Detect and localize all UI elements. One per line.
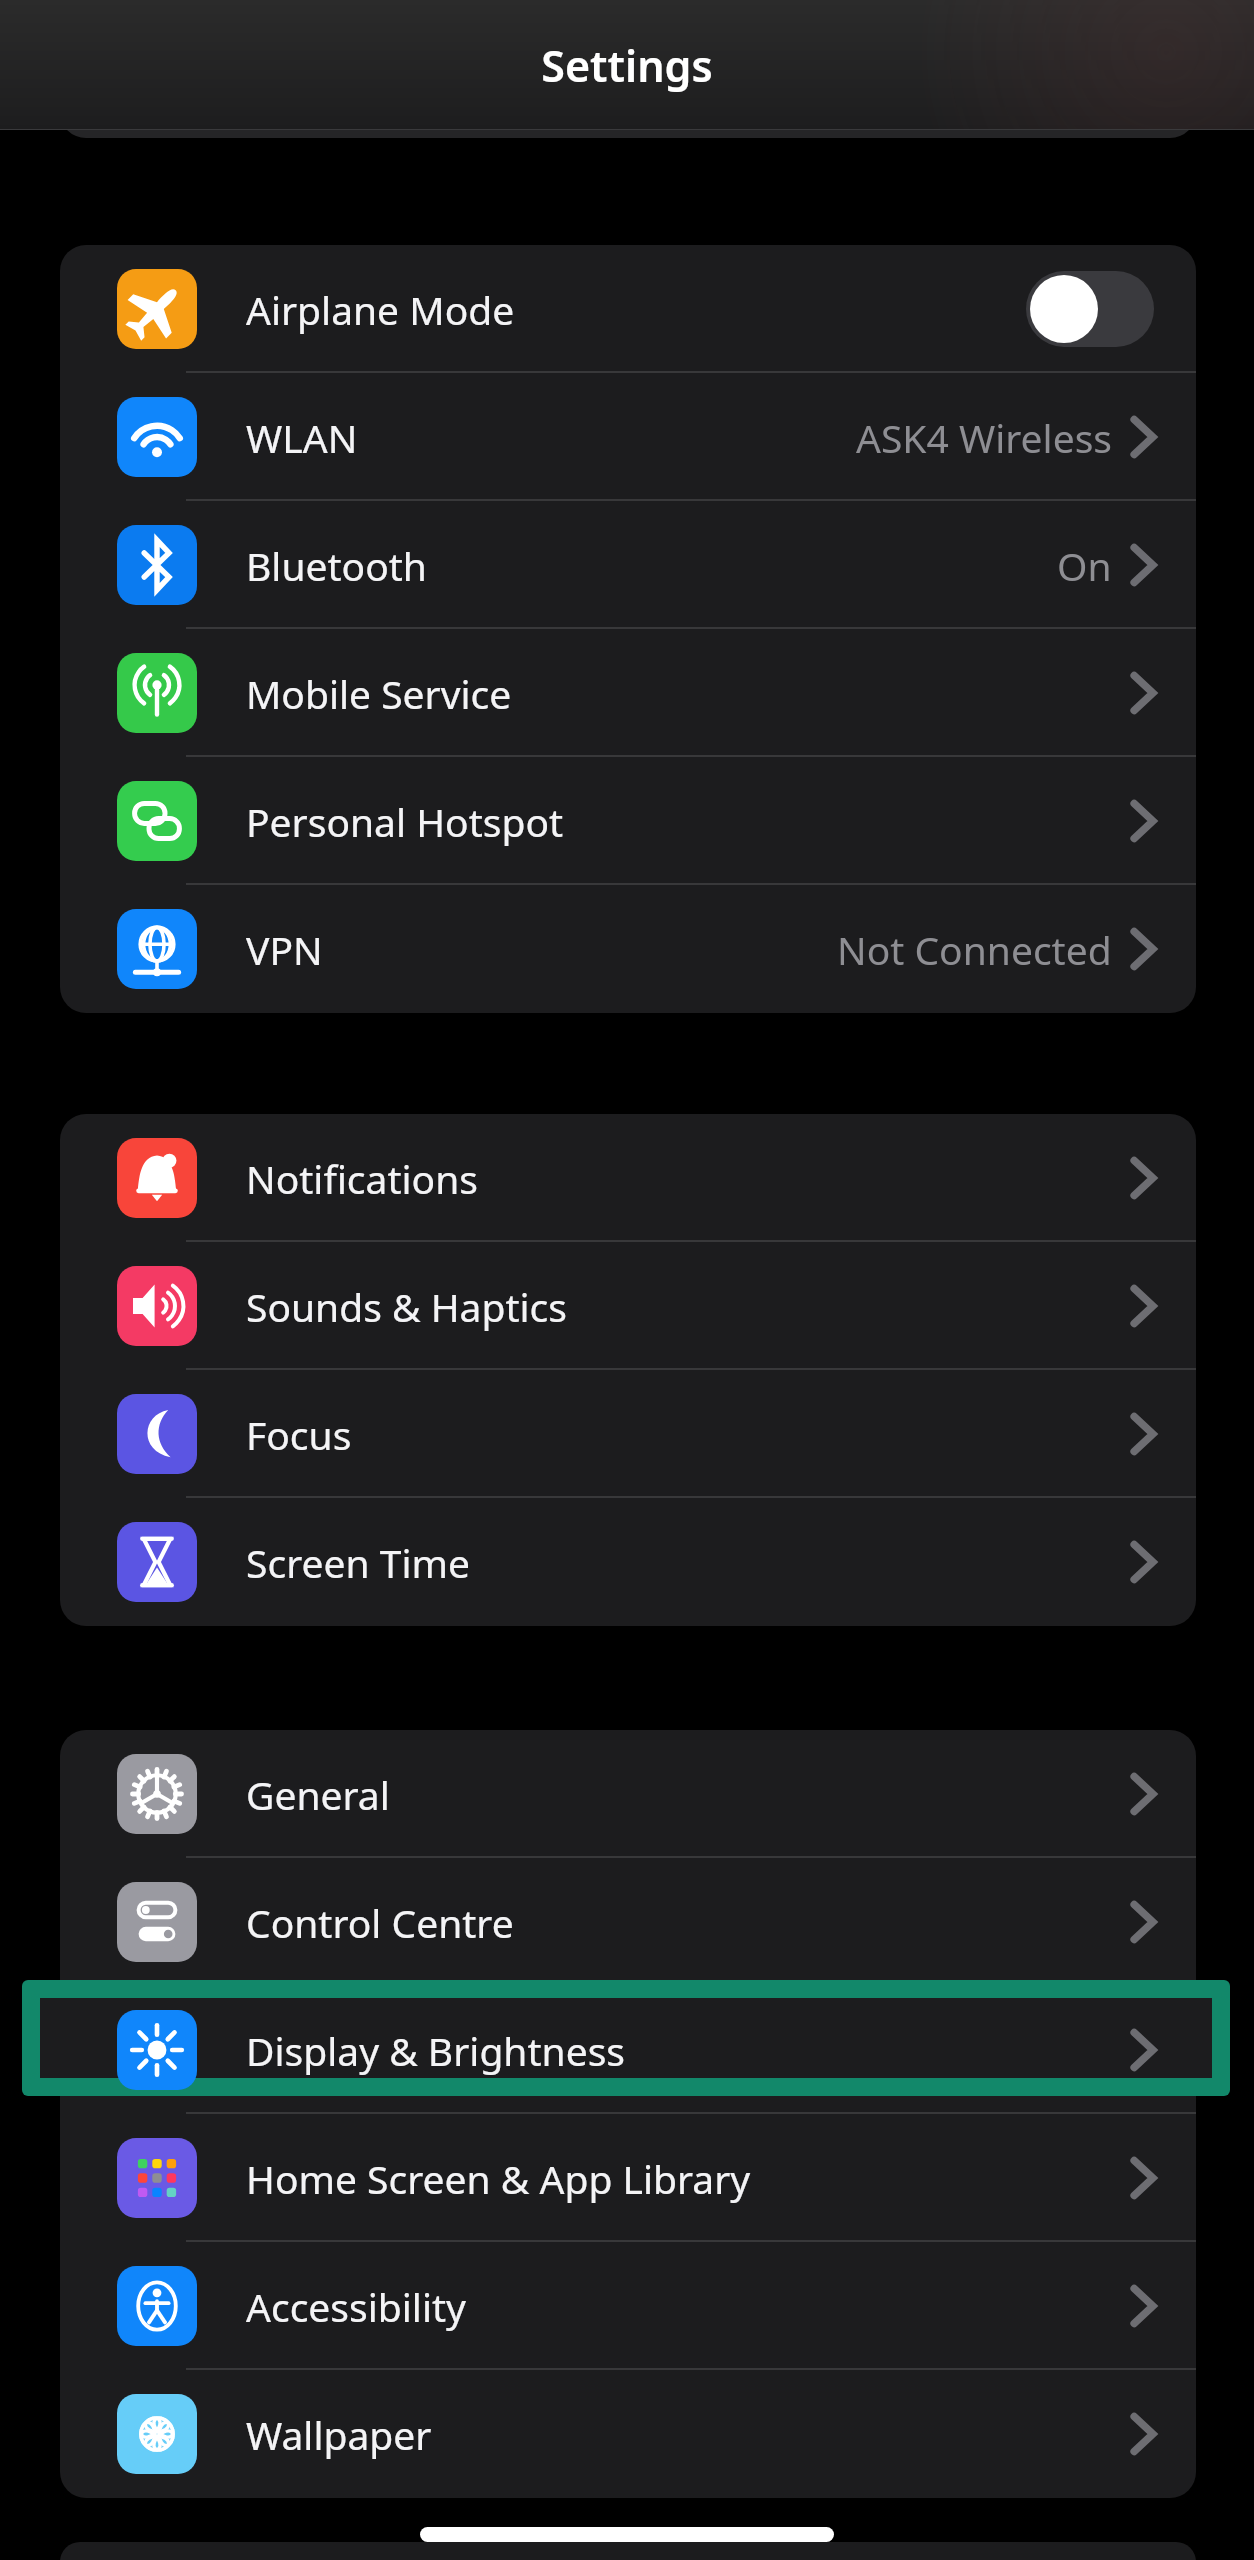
staticText: Not Connected bbox=[837, 923, 1112, 976]
staticText: Bluetooth bbox=[246, 539, 427, 592]
staticText: Wallpaper bbox=[246, 2408, 432, 2461]
button[interactable]: VPN bbox=[60, 885, 1196, 1013]
staticText: Mobile Service bbox=[246, 667, 512, 720]
staticText: WLAN bbox=[246, 411, 358, 464]
other: Open bbox=[1130, 2283, 1156, 2329]
button[interactable]: Sounds & Haptics bbox=[60, 1242, 1196, 1370]
other: Open bbox=[1130, 1155, 1156, 1201]
button[interactable]: Focus bbox=[60, 1370, 1196, 1498]
other: Open bbox=[1130, 1899, 1156, 1945]
other: Open bbox=[1130, 670, 1156, 716]
staticText: On bbox=[1057, 539, 1112, 592]
staticText: Display & Brightness bbox=[246, 2024, 626, 2077]
staticText: VPN bbox=[246, 923, 323, 976]
button[interactable]: Bluetooth bbox=[60, 501, 1196, 629]
other: Open bbox=[1130, 1771, 1156, 1817]
other: Open bbox=[1130, 1411, 1156, 1457]
button[interactable]: Control Centre bbox=[60, 1858, 1196, 1986]
staticText: Home Screen & App Library bbox=[246, 2152, 751, 2205]
other: Open bbox=[1130, 1539, 1156, 1585]
button[interactable]: Mobile Service bbox=[60, 629, 1196, 757]
button[interactable]: Wallpaper bbox=[60, 2370, 1196, 2498]
staticText: Personal Hotspot bbox=[246, 795, 564, 848]
button[interactable]: Screen Time bbox=[60, 1498, 1196, 1626]
other: Open bbox=[1130, 798, 1156, 844]
button[interactable]: Airplane Mode toggle bbox=[1026, 271, 1154, 347]
staticText: Screen Time bbox=[246, 1536, 470, 1589]
button[interactable]: Home Screen & App Library bbox=[60, 2114, 1196, 2242]
button[interactable]: Personal Hotspot bbox=[60, 757, 1196, 885]
staticText: Sounds & Haptics bbox=[246, 1280, 568, 1333]
staticText: Control Centre bbox=[246, 1896, 514, 1949]
other: Open bbox=[1130, 414, 1156, 460]
staticText: ASK4 Wireless bbox=[856, 411, 1112, 464]
staticText: Settings bbox=[0, 36, 1254, 95]
other: Open bbox=[1130, 2027, 1156, 2073]
staticText: General bbox=[246, 1768, 390, 1821]
other: Open bbox=[1130, 2155, 1156, 2201]
staticText: Display & Brightness bbox=[246, 2024, 626, 2077]
button[interactable]: Display & Brightness bbox=[60, 1986, 1196, 2114]
button[interactable]: General bbox=[60, 1730, 1196, 1858]
button[interactable]: Accessibility bbox=[60, 2242, 1196, 2370]
staticText: Notifications bbox=[246, 1152, 478, 1205]
button[interactable]: Airplane Mode bbox=[60, 245, 1196, 373]
other: Open bbox=[1130, 926, 1156, 972]
staticText: Focus bbox=[246, 1408, 352, 1461]
other: Open bbox=[1130, 2411, 1156, 2457]
other: Open bbox=[1130, 542, 1156, 588]
button[interactable]: Notifications bbox=[60, 1114, 1196, 1242]
other: Open bbox=[1130, 1283, 1156, 1329]
other: Open bbox=[1130, 2027, 1156, 2073]
button[interactable]: Display & Brightness bbox=[60, 1986, 1196, 2114]
button[interactable]: WLAN bbox=[60, 373, 1196, 501]
staticText: Accessibility bbox=[246, 2280, 466, 2333]
staticText: Airplane Mode bbox=[246, 283, 515, 336]
